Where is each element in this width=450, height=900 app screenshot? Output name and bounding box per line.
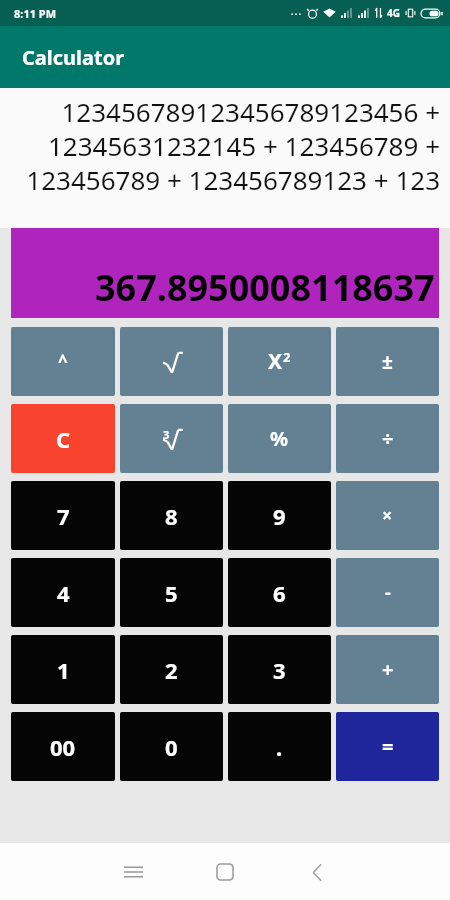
staticText: 0 — [165, 732, 178, 762]
button[interactable]: X — [228, 327, 331, 396]
button[interactable]: 9 — [228, 481, 331, 550]
staticText: % — [270, 425, 289, 452]
staticText: 2 — [165, 655, 178, 685]
staticText: 4 — [57, 578, 70, 608]
staticText: 3 — [273, 655, 286, 685]
button[interactable] — [120, 327, 223, 396]
button[interactable]: 0 — [120, 712, 223, 781]
staticText: - — [385, 580, 391, 605]
staticText: 8:11 PM — [14, 6, 57, 21]
button[interactable]: 5 — [120, 558, 223, 627]
staticText: 00 — [50, 732, 76, 762]
staticText: 5 — [165, 578, 178, 608]
staticText: Calculator — [22, 44, 125, 71]
button[interactable]: 3 — [228, 635, 331, 704]
staticText: 1 — [57, 655, 70, 685]
button[interactable]: 00 — [11, 712, 115, 781]
button[interactable]: ^ — [11, 327, 115, 396]
button[interactable]: × — [336, 481, 439, 550]
staticText: C — [56, 424, 71, 454]
button[interactable]: 4 — [11, 558, 115, 627]
button[interactable]: C — [11, 404, 115, 473]
button[interactable]: = — [336, 712, 439, 781]
staticText: ± — [382, 349, 393, 375]
staticText: + — [382, 656, 394, 683]
staticText: 8 — [165, 501, 178, 531]
button[interactable]: 1 — [11, 635, 115, 704]
staticText: ÷ — [382, 425, 394, 452]
staticText: 3 — [163, 427, 170, 442]
button[interactable]: . — [228, 712, 331, 781]
staticText: 123456789123456789123456 + 1234563123214… — [10, 94, 440, 197]
button[interactable]: ± — [336, 327, 439, 396]
button[interactable]: 8 — [120, 481, 223, 550]
staticText: 367.8950008118637 — [95, 263, 435, 312]
button[interactable]: Back — [271, 850, 363, 894]
staticText: . — [276, 732, 283, 762]
staticText: ^ — [58, 350, 68, 373]
staticText: 7 — [57, 501, 70, 531]
button[interactable]: 7 — [11, 481, 115, 550]
staticText: × — [382, 503, 393, 528]
button[interactable]: + — [336, 635, 439, 704]
staticText: = — [382, 733, 394, 760]
button[interactable]: Home — [179, 850, 271, 894]
button[interactable]: ÷ — [336, 404, 439, 473]
staticText: 2 — [283, 348, 291, 366]
staticText: 6 — [273, 578, 286, 608]
button[interactable]: - — [336, 558, 439, 627]
staticText: X — [268, 347, 283, 376]
staticText: 9 — [273, 501, 286, 531]
button[interactable]: Recent apps — [87, 850, 179, 894]
button[interactable]: % — [228, 404, 331, 473]
staticText: 4G — [387, 6, 400, 20]
button[interactable]: 3 — [120, 404, 223, 473]
button[interactable]: 2 — [120, 635, 223, 704]
button[interactable]: 6 — [228, 558, 331, 627]
